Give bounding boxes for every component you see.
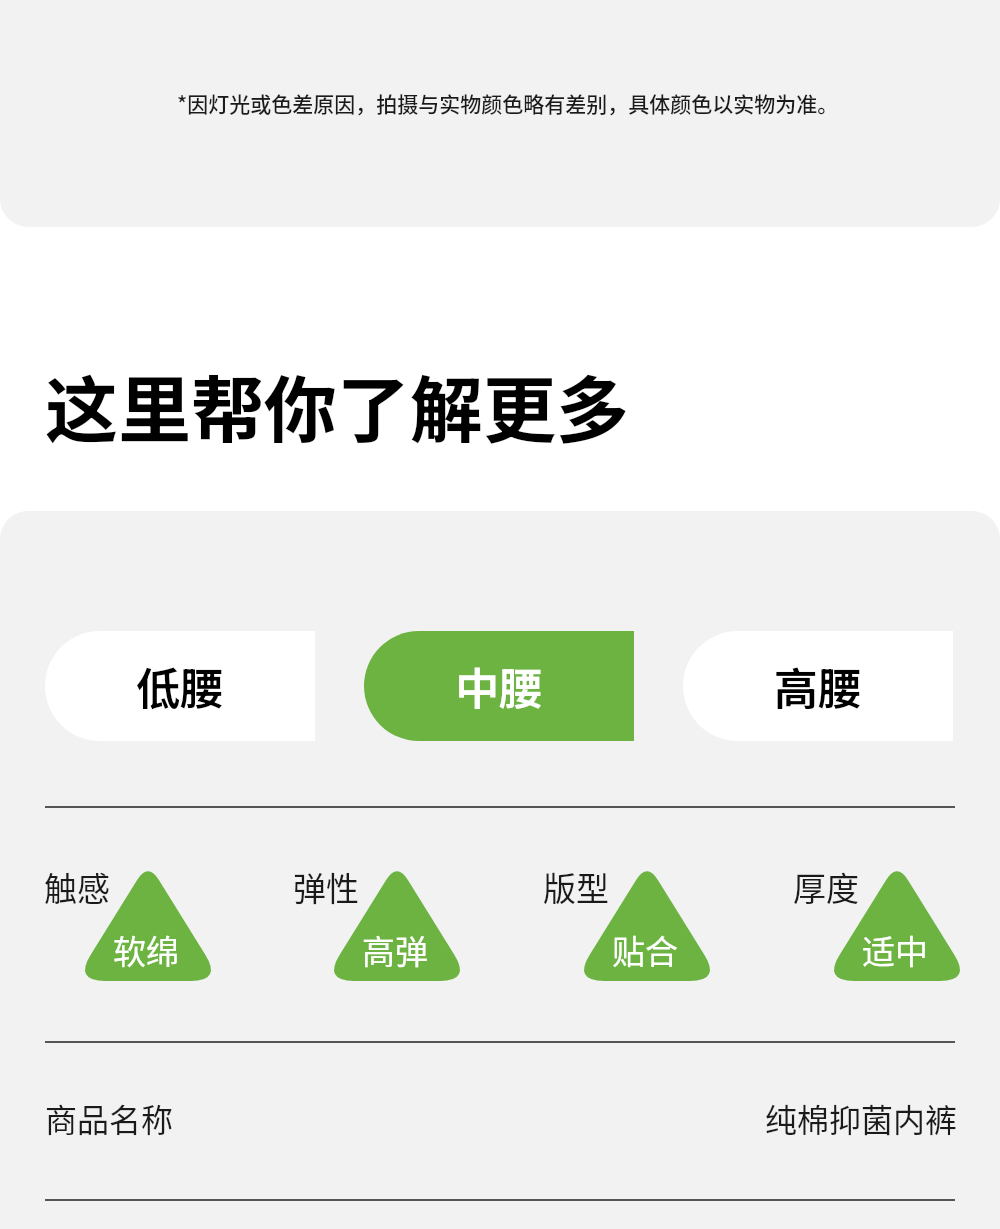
button[interactable]: 版型 xyxy=(546,863,707,988)
button[interactable]: 弹性 xyxy=(296,863,457,988)
staticText: 触感 xyxy=(44,863,110,911)
staticText: 适中 xyxy=(862,926,928,974)
staticText: *因灯光或色差原因，拍摄与实物颜色略有差别，具体颜色以实物为准。 xyxy=(177,88,839,118)
staticText: 中腰 xyxy=(455,654,543,718)
button[interactable]: 厚度 xyxy=(796,863,957,988)
staticText: 纯棉抑菌内裤 xyxy=(765,1095,958,1141)
button[interactable]: 低腰 xyxy=(45,631,315,741)
staticText: 低腰 xyxy=(136,654,224,718)
button[interactable]: 高腰 xyxy=(683,631,953,741)
staticText: 版型 xyxy=(543,863,609,911)
button[interactable]: 中腰 xyxy=(364,631,634,741)
staticText: 高弹 xyxy=(362,926,428,974)
staticText: 弹性 xyxy=(293,863,359,911)
staticText: 软绵 xyxy=(113,926,179,974)
staticText: 商品名称 xyxy=(45,1095,174,1141)
staticText: 高腰 xyxy=(774,654,862,718)
button[interactable]: 触感 xyxy=(47,863,208,988)
staticText: 厚度 xyxy=(793,863,859,911)
staticText: 贴合 xyxy=(612,926,678,974)
button[interactable]: 商品名称 xyxy=(0,1043,1000,1201)
staticText: 这里帮你了解更多 xyxy=(45,352,629,458)
